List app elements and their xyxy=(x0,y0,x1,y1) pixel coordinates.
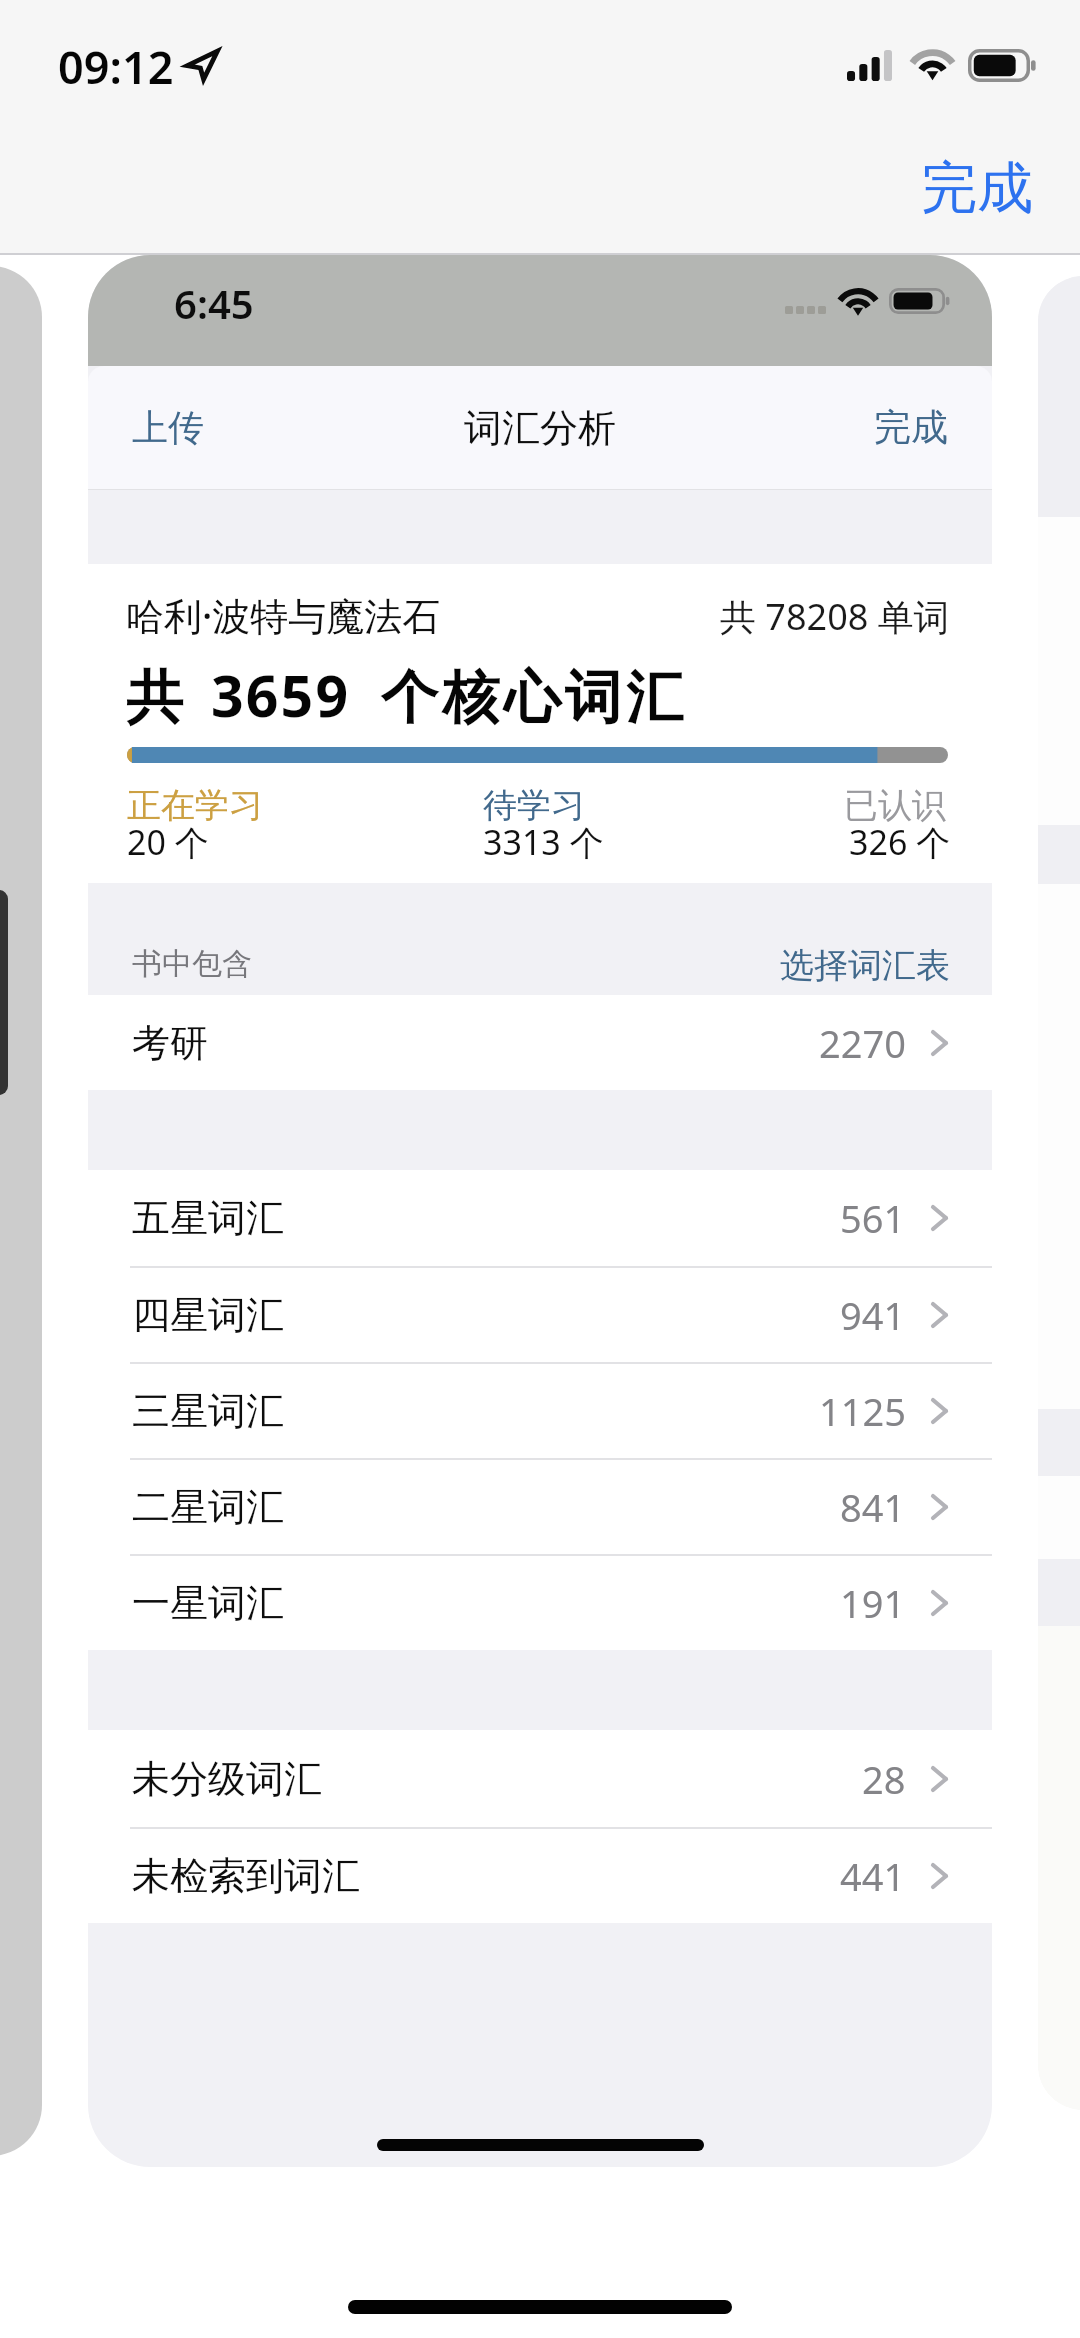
staticText: 未检索到词汇 xyxy=(132,1852,360,1900)
button[interactable]: 四星词汇 xyxy=(88,1266,992,1362)
staticText: 考研 xyxy=(132,1019,208,1067)
staticText: 已认识 xyxy=(844,784,946,827)
button[interactable]: 二星词汇 xyxy=(88,1458,992,1554)
staticText: 6:45 xyxy=(174,276,254,330)
button[interactable]: 一星词汇 xyxy=(88,1554,992,1650)
staticText: 完成 xyxy=(874,404,948,451)
staticText: 3659 xyxy=(211,656,351,734)
staticText: 326 个 xyxy=(849,819,951,865)
staticText: 哈利·波特与魔法石 xyxy=(126,589,441,641)
staticText: 未分级词汇 xyxy=(132,1755,322,1803)
staticText: 2270 xyxy=(819,1017,906,1069)
staticText: 共 78208 单词 xyxy=(720,592,950,641)
button[interactable]: 上传 xyxy=(114,389,222,466)
button[interactable]: 未分级词汇 xyxy=(88,1730,992,1827)
staticText: 个核心词汇 xyxy=(379,662,685,734)
staticText: 选择词汇表 xyxy=(780,944,950,987)
staticText: 561 xyxy=(840,1192,906,1244)
staticText: 二星词汇 xyxy=(132,1483,284,1531)
button[interactable]: 考研 xyxy=(88,995,992,1090)
button[interactable]: 五星词汇 xyxy=(88,1170,992,1266)
button[interactable]: 选择词汇表 xyxy=(764,934,966,997)
staticText: 五星词汇 xyxy=(132,1194,284,1242)
staticText: 20 个 xyxy=(127,819,209,865)
staticText: 09:12 xyxy=(58,36,174,97)
staticText: 441 xyxy=(840,1850,906,1902)
staticText: 正在学习 xyxy=(127,784,263,827)
staticText: 3313 个 xyxy=(483,819,604,865)
staticText: 一星词汇 xyxy=(132,1579,284,1627)
button[interactable]: 三星词汇 xyxy=(88,1362,992,1458)
staticText: 1125 xyxy=(819,1385,906,1437)
staticText: 待学习 xyxy=(483,784,585,827)
other: Location xyxy=(186,50,218,80)
staticText: 词汇分析 xyxy=(464,404,616,452)
staticText: 841 xyxy=(840,1481,906,1533)
staticText: 191 xyxy=(840,1577,906,1629)
button[interactable]: 未检索到词汇 xyxy=(88,1827,992,1923)
staticText: 共 xyxy=(126,662,183,734)
button[interactable]: 完成 xyxy=(856,388,966,467)
staticText: 28 xyxy=(862,1753,906,1805)
staticText: 四星词汇 xyxy=(132,1291,284,1339)
staticText: 书中包含 xyxy=(132,945,252,983)
staticText: 上传 xyxy=(132,405,204,450)
staticText: 941 xyxy=(840,1289,906,1341)
button[interactable]: 完成 xyxy=(903,143,1051,234)
staticText: 完成 xyxy=(921,153,1033,224)
staticText: 三星词汇 xyxy=(132,1387,284,1435)
